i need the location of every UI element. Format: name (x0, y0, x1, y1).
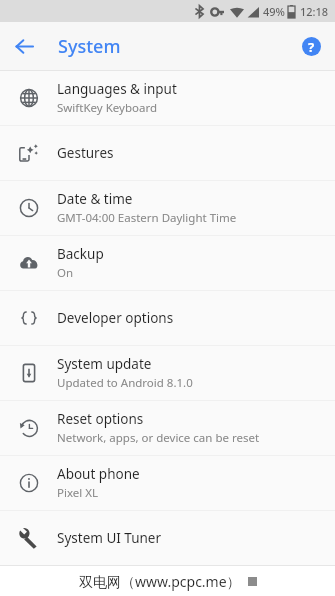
staticText: Updated to Android 8.1.0 (57, 375, 193, 391)
staticText: 双电网（www.pcpc.me） (79, 572, 241, 591)
staticText: Developer options (57, 309, 174, 327)
staticText: 12:18 (300, 4, 329, 19)
button[interactable]: Date & time (0, 181, 335, 235)
button[interactable]: Developer options (0, 291, 335, 345)
staticText: SwiftKey Keyboard (57, 100, 157, 116)
button[interactable]: System update (0, 346, 335, 400)
staticText: Reset options (57, 410, 144, 428)
staticText: System update (57, 355, 152, 373)
staticText: Pixel XL (57, 485, 98, 501)
button[interactable]: Reset options (0, 401, 335, 455)
button[interactable]: System UI Tuner (0, 511, 335, 565)
button[interactable]: Gestures (0, 126, 335, 180)
staticText: System (58, 34, 121, 59)
staticText: GMT-04:00 Eastern Daylight Time (57, 210, 237, 226)
staticText: Languages & input (57, 80, 177, 98)
staticText: Backup (57, 245, 104, 263)
button[interactable]: Backup (0, 236, 335, 290)
staticText: ? (308, 38, 315, 56)
staticText: System UI Tuner (57, 529, 162, 547)
staticText: Gestures (57, 144, 114, 162)
button[interactable]: Back (6, 28, 42, 64)
staticText: Date & time (57, 190, 133, 208)
staticText: 49% (263, 4, 285, 19)
staticText: Network, apps, or device can be reset (57, 430, 260, 446)
staticText: About phone (57, 465, 140, 483)
button[interactable]: About phone (0, 456, 335, 510)
button[interactable]: Help (295, 30, 327, 62)
staticText: On (57, 265, 74, 281)
button[interactable]: Languages & input (0, 71, 335, 125)
